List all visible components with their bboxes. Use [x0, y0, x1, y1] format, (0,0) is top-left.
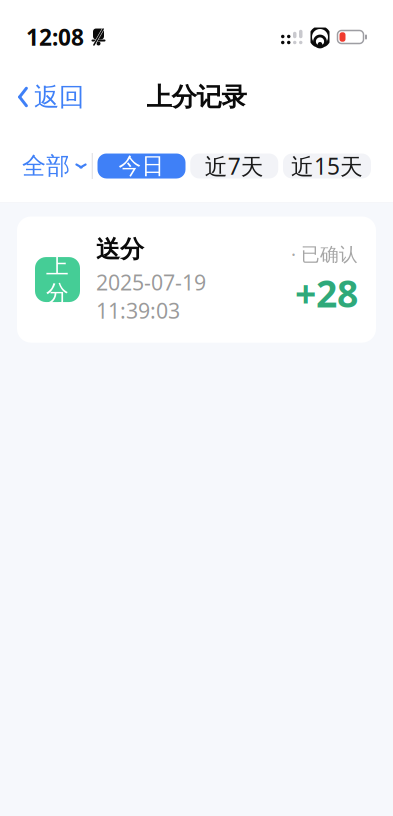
button[interactable]: 近7天 [190, 153, 278, 178]
staticText: · 已确认 [291, 241, 358, 266]
button[interactable]: 近15天 [283, 153, 371, 178]
staticText: 送分 [96, 234, 144, 264]
button[interactable]: 今日 [97, 153, 185, 178]
button[interactable]: 全部 [22, 143, 87, 189]
staticText: 上分记录 [146, 81, 246, 112]
button[interactable]: 返回 [8, 73, 92, 120]
staticText: 上分 [46, 252, 69, 307]
staticText: 今日 [118, 152, 164, 180]
staticText: 全部 [22, 151, 70, 181]
staticText: 返回 [34, 81, 84, 112]
staticText: +28 [295, 268, 358, 318]
staticText: 12:08 [26, 22, 84, 52]
staticText: 近15天 [291, 151, 363, 181]
staticText: 2025-07-19 11:39:03 [96, 268, 206, 325]
button[interactable]: 上分 [17, 216, 376, 343]
staticText: 近7天 [205, 151, 264, 181]
